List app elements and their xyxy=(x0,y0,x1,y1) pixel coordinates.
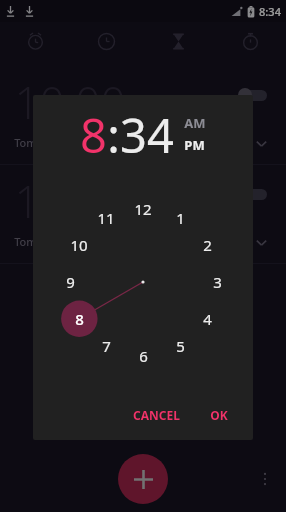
staticText: 3 xyxy=(213,272,222,292)
staticText: 6 xyxy=(139,346,148,366)
button[interactable]: 6 xyxy=(128,341,158,371)
button[interactable]: Expand alarm xyxy=(252,134,270,152)
staticText: 11:30 xyxy=(14,171,126,231)
button[interactable]: 11 xyxy=(91,203,121,233)
staticText: 2 xyxy=(203,235,212,255)
staticText: : xyxy=(107,103,120,165)
staticText: OK xyxy=(210,407,228,423)
staticText: 34 xyxy=(120,103,174,165)
button[interactable]: 11:30 xyxy=(0,165,286,263)
staticText: 8 xyxy=(80,103,107,165)
staticText: CANCEL xyxy=(133,407,180,423)
button[interactable]: Clock xyxy=(71,22,142,60)
button[interactable]: 8 xyxy=(80,103,107,165)
staticText: 7 xyxy=(102,336,111,356)
button[interactable]: 10:00 xyxy=(0,66,286,164)
staticText: 12 xyxy=(134,199,152,219)
staticText: 10 xyxy=(70,235,88,255)
staticText: 8:34 xyxy=(259,4,281,19)
button[interactable]: 2 xyxy=(192,230,222,260)
button[interactable]: CANCEL xyxy=(124,400,189,430)
staticText: 5 xyxy=(176,336,185,356)
button[interactable]: Alarm xyxy=(0,22,71,60)
button[interactable]: Timer xyxy=(142,22,214,60)
staticText: PM xyxy=(184,136,205,154)
button[interactable]: 10 xyxy=(64,230,94,260)
button[interactable]: Toggle alarm xyxy=(238,187,272,201)
button[interactable]: 34 xyxy=(120,103,174,165)
button[interactable]: 5 xyxy=(165,331,195,361)
button[interactable]: 4 xyxy=(192,304,222,334)
button[interactable]: Add alarm xyxy=(118,454,168,504)
button[interactable]: Stopwatch xyxy=(214,22,286,60)
staticText: 8 xyxy=(75,309,84,329)
staticText: Tomorrow xyxy=(14,234,68,249)
staticText: 9 xyxy=(66,272,75,292)
button[interactable]: 1 xyxy=(165,203,195,233)
button[interactable]: 8 xyxy=(64,304,94,334)
button[interactable]: Toggle alarm xyxy=(238,88,272,102)
button[interactable]: 9 xyxy=(55,267,85,297)
button[interactable]: 3 xyxy=(202,267,232,297)
staticText: 1 xyxy=(176,208,185,228)
staticText: 11 xyxy=(97,208,115,228)
button[interactable]: 7 xyxy=(91,331,121,361)
button[interactable]: OK xyxy=(201,400,237,430)
button[interactable]: 12 xyxy=(128,194,158,224)
button[interactable]: More options xyxy=(252,466,278,492)
staticText: 4 xyxy=(203,309,212,329)
staticText: Tomorrow xyxy=(14,135,68,150)
button[interactable]: PM xyxy=(184,136,205,154)
staticText: AM xyxy=(184,114,206,132)
button[interactable]: Expand alarm xyxy=(252,233,270,251)
staticText: 10:00 xyxy=(14,72,126,132)
button[interactable]: AM xyxy=(184,114,206,132)
